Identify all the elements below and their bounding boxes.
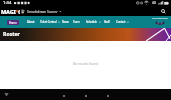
staticText: Home [9, 21, 17, 25]
button[interactable]: News [61, 18, 70, 26]
button[interactable]: Contact [115, 18, 130, 26]
staticText: Ticket Central [40, 20, 57, 24]
staticText: Staff [104, 20, 110, 24]
staticText: CITY [18, 8, 20, 14]
staticText: No results found [73, 62, 98, 66]
button[interactable]: MagicCity home [1, 8, 20, 14]
button[interactable]: Schedule [85, 18, 102, 26]
button[interactable]: Back [56, 89, 72, 100]
staticText: Smackdown Soccer [27, 9, 58, 14]
button[interactable]: Our affiliates [152, 17, 168, 25]
button[interactable]: Ticket Central [39, 18, 61, 26]
button[interactable]: Staff [103, 18, 111, 26]
button[interactable]: Search [159, 7, 168, 16]
staticText: Team [73, 20, 80, 24]
button[interactable]: Home [7, 20, 19, 25]
staticText: 1:34 [3, 0, 12, 6]
staticText: Schedule [86, 20, 98, 24]
staticText: 4G [152, 1, 157, 5]
staticText: About [27, 20, 35, 24]
button[interactable]: About [26, 18, 36, 26]
staticText: MAGI [1, 8, 16, 14]
staticText: Contact [116, 20, 126, 24]
staticText: News [62, 20, 69, 24]
button[interactable]: Team [72, 18, 81, 26]
button[interactable]: Hide keyboard [4, 92, 9, 97]
button[interactable]: Home [78, 89, 94, 100]
staticText: OUR AFFILIATES [152, 17, 168, 20]
button[interactable]: Recents [100, 89, 116, 100]
staticText: Roster [3, 30, 20, 37]
